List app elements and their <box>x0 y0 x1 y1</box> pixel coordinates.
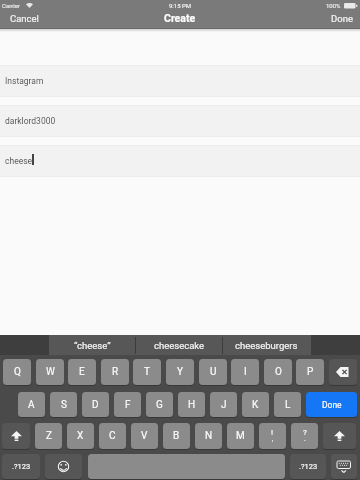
staticText: cheese <box>5 156 33 166</box>
staticText: 9:15 PM <box>169 2 192 9</box>
staticText: J <box>221 399 227 411</box>
staticText: Y <box>177 366 184 378</box>
staticText: X <box>77 430 84 442</box>
staticText: B <box>173 430 180 442</box>
staticText: darklord3000 <box>5 116 56 126</box>
staticText: S <box>61 399 67 411</box>
staticText: E <box>79 366 85 378</box>
staticText: “cheese” <box>74 340 111 351</box>
staticText: Instagram <box>5 76 44 86</box>
staticText: K <box>252 399 259 411</box>
staticText: cheesecake <box>154 340 205 351</box>
staticText: O <box>275 366 282 378</box>
staticText: D <box>92 399 99 411</box>
staticText: Create <box>164 12 196 24</box>
staticText: A <box>28 399 35 411</box>
staticText: W <box>46 366 55 378</box>
staticText: L <box>285 399 291 411</box>
staticText: C <box>109 430 116 442</box>
staticText: G <box>156 399 163 411</box>
staticText: , <box>272 435 274 443</box>
staticText: Done <box>331 13 353 24</box>
staticText: M <box>236 430 245 442</box>
staticText: P <box>307 366 314 378</box>
staticText: U <box>210 366 217 378</box>
staticText: F <box>125 399 131 411</box>
staticText: V <box>141 430 148 442</box>
staticText: ! <box>271 428 274 437</box>
staticText: H <box>188 399 196 411</box>
staticText: T <box>144 366 150 378</box>
staticText: R <box>112 366 119 378</box>
staticText: I <box>244 366 247 378</box>
staticText: Carrier <box>2 2 20 9</box>
staticText: .?123 <box>12 462 31 471</box>
staticText: Z <box>46 430 52 442</box>
staticText: N <box>205 430 213 442</box>
staticText: ? <box>303 428 307 437</box>
staticText: 100% <box>326 2 341 9</box>
staticText: Done <box>322 400 342 410</box>
staticText: .?123 <box>299 462 318 471</box>
staticText: Q <box>14 366 21 378</box>
staticText: Cancel <box>10 13 39 24</box>
staticText: . <box>304 435 306 443</box>
staticText: cheeseburgers <box>235 340 298 351</box>
